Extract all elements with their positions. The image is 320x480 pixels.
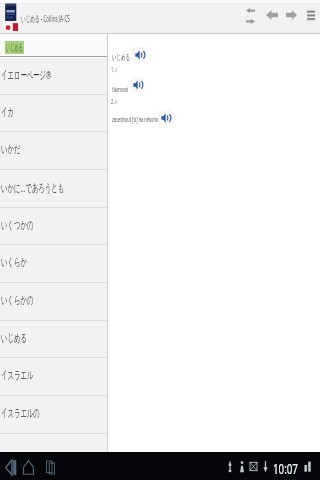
button[interactable]: いかだ <box>0 132 107 170</box>
staticText: 1. <box>111 65 115 75</box>
button[interactable]: いくらかの <box>0 283 107 321</box>
staticText: いじめる <box>112 52 130 62</box>
button[interactable]: いくらか <box>0 245 107 283</box>
button[interactable]: Menu <box>302 0 320 34</box>
button[interactable]: Play pronunciation <box>130 77 144 92</box>
button[interactable]: Home <box>17 452 40 480</box>
staticText: v <box>115 97 117 107</box>
button[interactable]: いくつかの <box>0 208 107 246</box>
button[interactable]: Back <box>0 452 22 480</box>
button[interactable]: イスラエル <box>0 358 107 396</box>
button[interactable]: イカ <box>0 95 107 133</box>
staticText: いじめる - Collins JA-CS <box>21 12 70 25</box>
button[interactable]: Swap languages <box>241 0 260 34</box>
button[interactable]: Play pronunciation <box>132 47 146 62</box>
staticText: いかに…であろうとも <box>1 180 65 196</box>
staticText: いじめる <box>1 331 27 345</box>
button[interactable]: いじめる <box>0 34 107 58</box>
button[interactable]: イエローページ® <box>0 57 107 95</box>
button[interactable]: Recents <box>40 452 61 480</box>
staticText: イカ <box>1 105 14 119</box>
staticText: イスラエルの <box>1 406 40 420</box>
button[interactable]: いかに…であろうとも <box>0 170 107 208</box>
staticText: いかだ <box>1 142 21 156</box>
button[interactable]: イスラエルの <box>0 396 107 434</box>
staticText: いくらかの <box>1 293 33 307</box>
staticText: いくつかの <box>1 218 33 232</box>
staticText: šikanovat <box>112 84 128 94</box>
staticText: zasednout [si] na někoho <box>112 115 158 125</box>
staticText: イスラエル <box>1 368 33 382</box>
button[interactable]: Back <box>261 0 283 34</box>
staticText: いじめる <box>6 41 23 54</box>
button[interactable]: いじめる <box>0 321 107 359</box>
staticText: いくらか <box>1 255 27 269</box>
staticText: v <box>115 65 117 75</box>
button[interactable]: Play pronunciation <box>158 110 172 125</box>
staticText: 2. <box>111 97 115 107</box>
staticText: 10:07 <box>273 458 298 478</box>
button[interactable]: Forward <box>281 0 302 34</box>
staticText: イエローページ® <box>1 67 52 83</box>
